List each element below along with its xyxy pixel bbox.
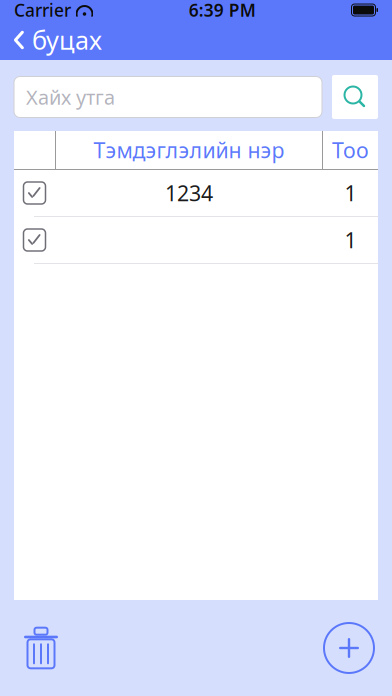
button[interactable]: Delete	[12, 617, 70, 679]
staticText: 1	[344, 226, 356, 254]
staticText: Тоо	[332, 136, 369, 164]
staticText: 1234	[165, 179, 213, 207]
staticText: Хайх утга	[26, 84, 115, 110]
button[interactable]: буцах	[0, 17, 116, 63]
staticText: Carrier	[14, 0, 71, 21]
button[interactable]: Select row	[14, 170, 55, 216]
button[interactable]: Select row	[14, 217, 55, 263]
button[interactable]: Add	[318, 617, 380, 679]
staticText: буцах	[32, 23, 102, 57]
staticText: 6:39 PM	[189, 0, 256, 21]
staticText: 1	[344, 179, 356, 207]
staticText: Тэмдэглэлийн нэр	[93, 136, 284, 164]
button[interactable]: Search	[332, 75, 378, 119]
